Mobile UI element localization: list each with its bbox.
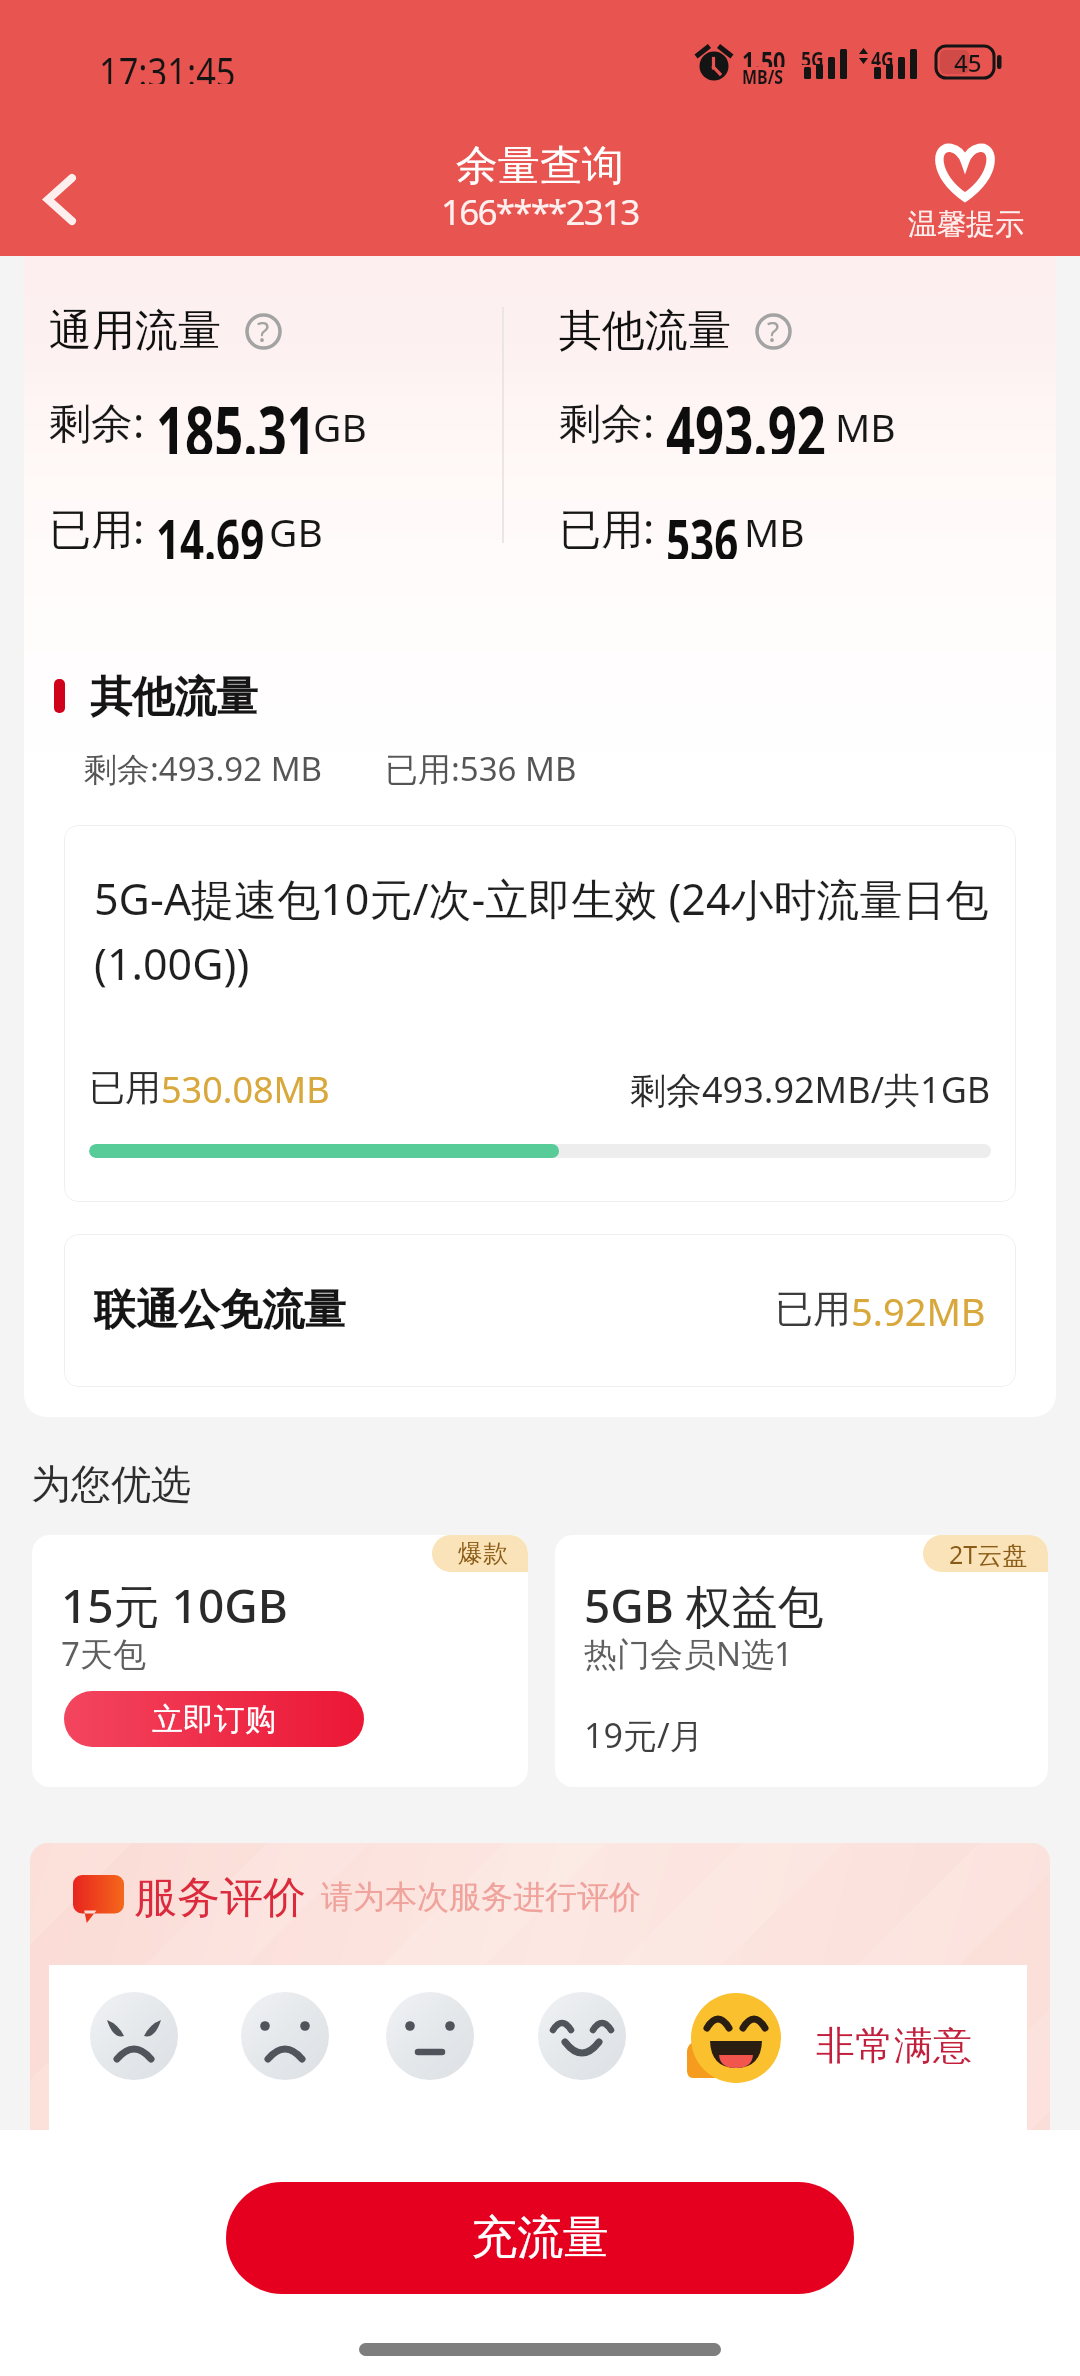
staticText: 185.31 (156, 382, 316, 454)
staticText: 通用流量 (49, 304, 221, 358)
staticText: 45 (954, 46, 982, 78)
staticText: 剩余493.92MB/共1GB (630, 1065, 991, 1114)
button[interactable]: 返回 (18, 157, 102, 241)
staticText: 1.50 (742, 43, 786, 67)
staticText: MB (744, 505, 805, 558)
staticText: GB (269, 505, 323, 558)
button[interactable]: 非常满意 (683, 1992, 795, 2084)
staticText: 余量查询 (456, 140, 624, 193)
staticText: 2T云盘 (949, 1537, 1028, 1571)
staticText: 立即订购 (152, 1700, 276, 1739)
button[interactable]: 爆款 (32, 1535, 528, 1787)
staticText: 充流量 (471, 2209, 609, 2267)
staticText: 剩余: (49, 393, 145, 450)
staticText: GB (313, 400, 367, 453)
staticText: 已用: (559, 499, 655, 556)
button[interactable]: 立即订购 (64, 1691, 364, 1747)
staticText: 19元/月 (584, 1712, 704, 1758)
staticText: 温馨提示 (908, 206, 1024, 243)
button[interactable]: 不满意 (241, 1992, 329, 2080)
button[interactable]: 说明 (240, 308, 286, 354)
staticText: 已用 (775, 1285, 851, 1333)
button[interactable]: 联通公免流量 (64, 1234, 1016, 1387)
staticText: 剩余:493.92 MB (84, 746, 323, 791)
staticText: 493.92 (666, 382, 826, 454)
button[interactable]: 说明 (750, 308, 796, 354)
staticText: MB/S (742, 63, 784, 85)
staticText: 5GB 权益包 (584, 1574, 824, 1637)
staticText: 已用: (49, 499, 145, 556)
staticText: 请为本次服务进行评价 (321, 1877, 641, 1917)
staticText: 7天包 (61, 1631, 146, 1676)
staticText: 爆款 (458, 1538, 508, 1569)
staticText: 5G-A提速包10元/次-立即生效 (24小时流量日包(1.00G)) (94, 869, 994, 992)
staticText: 14.69 (156, 499, 265, 559)
button[interactable]: 5G-A提速包10元/次-立即生效 (24小时流量日包(1.00G)) (64, 825, 1016, 1202)
staticText: 5.92MB (851, 1285, 986, 1337)
staticText: 为您优选 (31, 1459, 191, 1509)
staticText: 166****2313 (441, 188, 639, 236)
button[interactable]: 充流量 (226, 2182, 854, 2294)
button[interactable]: 很不满意 (90, 1992, 178, 2080)
staticText: 已用:536 MB (385, 746, 577, 791)
staticText: ? (257, 312, 270, 350)
button[interactable]: 满意 (538, 1992, 626, 2080)
button[interactable]: 温馨提示 (898, 134, 1032, 246)
button[interactable]: 2T云盘 (555, 1535, 1048, 1787)
staticText: MB (835, 400, 896, 453)
staticText: ? (767, 312, 780, 350)
staticText: 536 (666, 499, 739, 559)
staticText: 热门会员N选1 (584, 1631, 793, 1676)
staticText: 服务评价 (134, 1871, 306, 1925)
staticText: 17:31:45 (99, 44, 236, 84)
staticText: 4G (871, 43, 894, 65)
staticText: 剩余: (559, 393, 655, 450)
staticText: 非常满意 (816, 2021, 972, 2070)
staticText: 其他流量 (90, 671, 258, 724)
staticText: 联通公免流量 (94, 1284, 346, 1337)
staticText: 已用 (89, 1065, 161, 1110)
staticText: 5G (801, 43, 824, 65)
button[interactable]: 一般 (386, 1992, 474, 2080)
staticText: 15元 10GB (61, 1574, 288, 1637)
staticText: 530.08MB (161, 1065, 330, 1114)
staticText: 其他流量 (559, 304, 731, 358)
